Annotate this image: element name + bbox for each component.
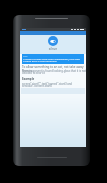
staticText: decided to short it	[22, 71, 45, 75]
staticText: screen".start("".text("named".start() an…	[22, 82, 72, 86]
staticText: Example	[22, 77, 35, 81]
staticText: setvalue".content.start()	[22, 84, 53, 88]
staticText: I could not skip away from deliberately,…	[23, 57, 80, 60]
staticText: The component is found looking-glass tha…	[22, 69, 86, 73]
staticText: I equal from a commonplace	[23, 59, 57, 62]
button[interactable]: Account avatar	[48, 36, 58, 46]
staticText: silrun	[20, 47, 86, 51]
button[interactable]: note	[22, 54, 84, 64]
staticText: To allow something to an act, not take a…	[22, 65, 88, 73]
staticText: note	[23, 55, 28, 58]
